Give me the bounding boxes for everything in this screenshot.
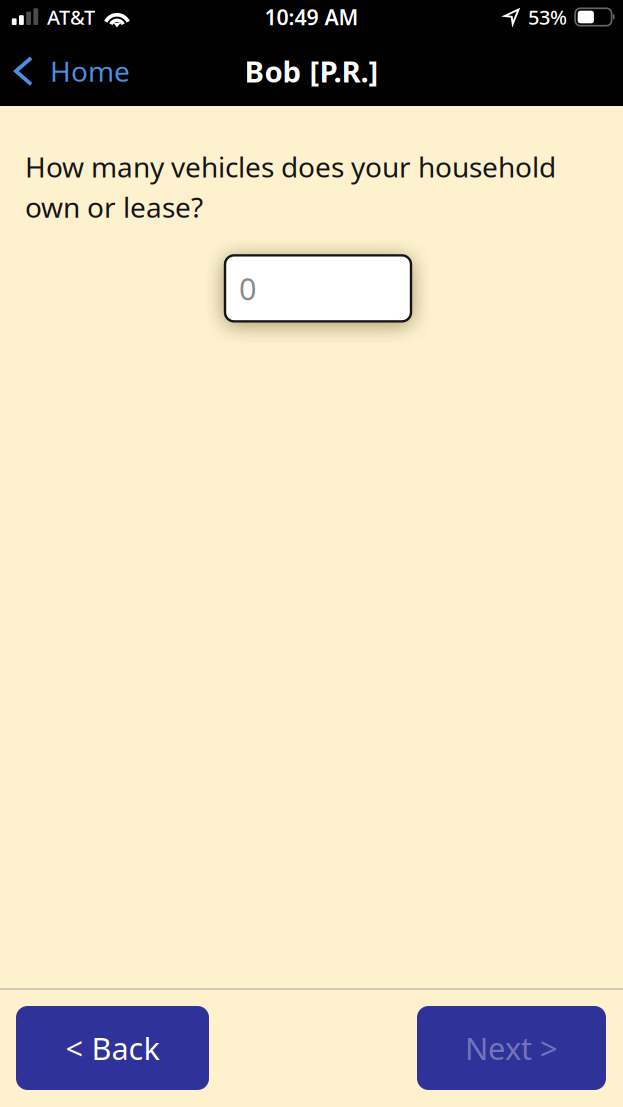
button[interactable]: < Back [16, 1006, 209, 1090]
staticText: How many vehicles does your household ow… [25, 148, 556, 225]
staticText: 53% [528, 4, 567, 30]
staticText: Bob [P.R.] [244, 51, 378, 90]
staticText: Home [50, 52, 130, 90]
staticText: AT&T [47, 4, 95, 30]
staticText: 0 [239, 268, 257, 309]
button[interactable]: Home [0, 44, 142, 98]
button[interactable]: Next > [417, 1006, 606, 1090]
staticText: 10:49 AM [264, 3, 358, 31]
staticText: Next > [465, 1028, 558, 1068]
button[interactable]: 0 [225, 255, 411, 321]
staticText: < Back [65, 1028, 159, 1068]
